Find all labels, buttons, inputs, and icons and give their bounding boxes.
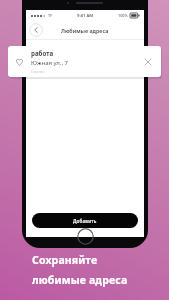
- button[interactable]: Favorite: [8, 46, 161, 77]
- staticText: 100%: [118, 13, 128, 18]
- button[interactable]: Добавить: [32, 213, 138, 228]
- button[interactable]: Remove: [142, 56, 154, 68]
- staticText: Главная: [31, 69, 45, 74]
- staticText: Южная ул., 7: [31, 59, 68, 67]
- staticText: любимые адреса: [32, 273, 128, 287]
- staticText: Добавить: [73, 218, 97, 224]
- staticText: работа: [31, 49, 54, 57]
- staticText: 9:41 AM: [77, 13, 94, 19]
- other: Favorite: [15, 57, 24, 66]
- staticText: TF: [48, 13, 53, 18]
- button[interactable]: Back: [29, 23, 43, 37]
- button[interactable]: Home: [77, 228, 94, 245]
- staticText: Любимые адреса: [61, 27, 109, 34]
- staticText: Сохраняйте: [32, 253, 98, 267]
